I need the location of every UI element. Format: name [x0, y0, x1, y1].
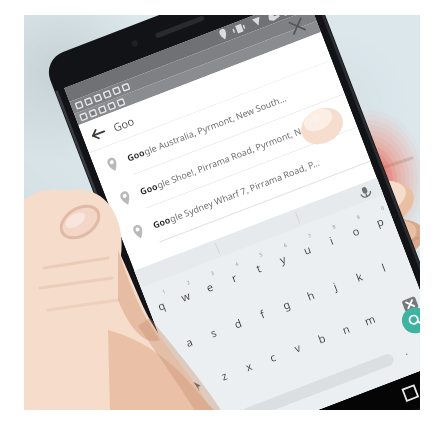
button[interactable]: Photo of a hand holding a phone showing … [0, 0, 444, 426]
